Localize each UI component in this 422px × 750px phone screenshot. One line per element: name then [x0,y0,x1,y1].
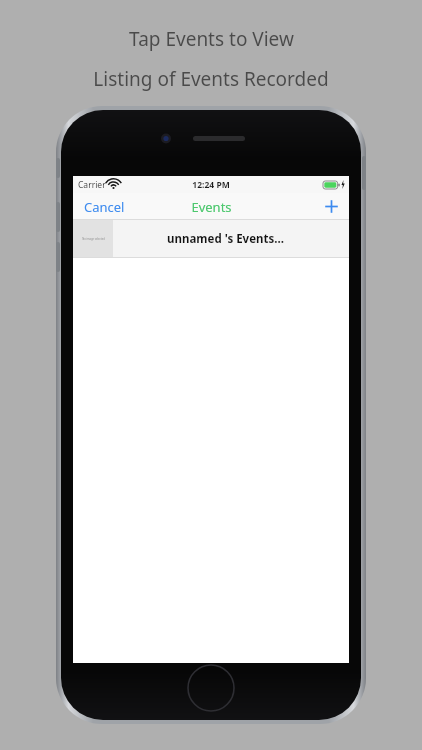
staticText: 12:24 PM [192,179,230,191]
button[interactable]: Cancel [73,193,136,220]
button[interactable]: No image selected [73,220,349,258]
staticText: unnamed 's Events... [167,231,284,247]
button[interactable]: Add event [314,193,349,220]
staticText: Tap Events to View [129,26,294,52]
staticText: Events [191,198,232,216]
staticText: Listing of Events Recorded [93,66,329,92]
staticText: No image selected [82,237,105,241]
staticText: Cancel [84,198,125,216]
staticText: Carrier [78,179,106,191]
